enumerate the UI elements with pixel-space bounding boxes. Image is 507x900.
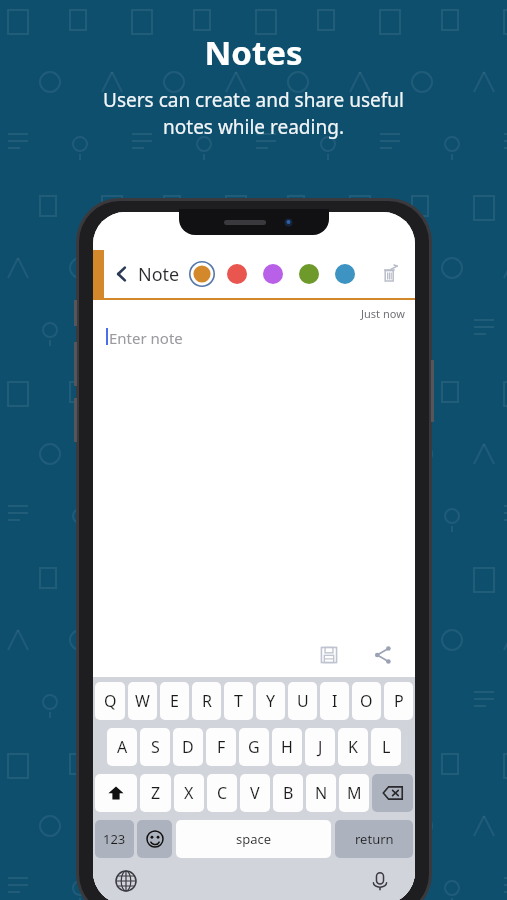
button[interactable]: 123: [95, 820, 134, 858]
button[interactable]: return: [335, 820, 413, 858]
button[interactable]: Z: [140, 774, 171, 812]
button[interactable]: Emoji: [137, 820, 172, 858]
button[interactable]: G: [239, 728, 269, 766]
button[interactable]: M: [339, 774, 369, 812]
staticText: H: [281, 736, 293, 758]
button[interactable]: H: [272, 728, 302, 766]
staticText: D: [182, 736, 194, 758]
staticText: 123: [103, 830, 126, 848]
staticText: K: [348, 736, 358, 758]
staticText: Users can create and share useful notes …: [103, 87, 404, 140]
button[interactable]: E: [160, 682, 189, 720]
button[interactable]: space: [176, 820, 331, 858]
button[interactable]: N: [306, 774, 336, 812]
button[interactable]: Key: [372, 774, 413, 812]
button[interactable]: Save: [315, 641, 343, 669]
staticText: Z: [151, 782, 161, 804]
button[interactable]: Colour: [263, 264, 283, 284]
button[interactable]: A: [107, 728, 137, 766]
staticText: J: [318, 736, 323, 758]
button[interactable]: K: [338, 728, 368, 766]
staticText: Just now: [361, 306, 405, 321]
button[interactable]: T: [224, 682, 253, 720]
staticText: F: [217, 736, 226, 758]
button[interactable]: J: [305, 728, 335, 766]
button[interactable]: Dictation: [369, 870, 393, 894]
button[interactable]: S: [140, 728, 170, 766]
staticText: Y: [266, 690, 276, 712]
button[interactable]: Colour: [335, 264, 355, 284]
staticText: A: [117, 736, 128, 758]
staticText: Q: [104, 690, 117, 712]
staticText: Note: [138, 262, 180, 287]
button[interactable]: Colour: [227, 264, 247, 284]
staticText: W: [135, 690, 150, 712]
button[interactable]: Colour: [189, 261, 215, 287]
button[interactable]: Delete note: [375, 259, 405, 289]
staticText: M: [347, 782, 362, 804]
button[interactable]: F: [206, 728, 236, 766]
staticText: R: [202, 690, 212, 712]
button[interactable]: Share: [369, 641, 397, 669]
staticText: I: [332, 690, 338, 712]
staticText: B: [283, 782, 294, 804]
button[interactable]: D: [173, 728, 203, 766]
staticText: U: [297, 690, 309, 712]
staticText: L: [382, 736, 391, 758]
staticText: P: [394, 690, 404, 712]
button[interactable]: B: [273, 774, 303, 812]
staticText: X: [184, 782, 194, 804]
button[interactable]: L: [371, 728, 401, 766]
staticText: T: [234, 690, 243, 712]
button[interactable]: V: [240, 774, 270, 812]
staticText: O: [360, 690, 373, 712]
button[interactable]: I: [320, 682, 349, 720]
staticText: C: [217, 782, 228, 804]
staticText: Notes: [204, 30, 303, 75]
button[interactable]: Q: [95, 682, 125, 720]
staticText: return: [355, 830, 394, 848]
staticText: E: [170, 690, 179, 712]
staticText: N: [315, 782, 328, 804]
button[interactable]: O: [352, 682, 381, 720]
button[interactable]: Colour: [299, 264, 319, 284]
button[interactable]: C: [207, 774, 237, 812]
staticText: V: [250, 782, 260, 804]
button[interactable]: X: [174, 774, 204, 812]
staticText: space: [236, 830, 272, 848]
button[interactable]: Y: [256, 682, 285, 720]
button[interactable]: Change keyboard: [115, 870, 139, 894]
button[interactable]: P: [384, 682, 413, 720]
staticText: Enter note: [109, 328, 183, 348]
button[interactable]: U: [288, 682, 317, 720]
staticText: S: [151, 736, 160, 758]
button[interactable]: Back: [111, 263, 133, 285]
button[interactable]: W: [128, 682, 157, 720]
button[interactable]: Key: [95, 774, 137, 812]
staticText: G: [248, 736, 260, 758]
button[interactable]: R: [192, 682, 221, 720]
